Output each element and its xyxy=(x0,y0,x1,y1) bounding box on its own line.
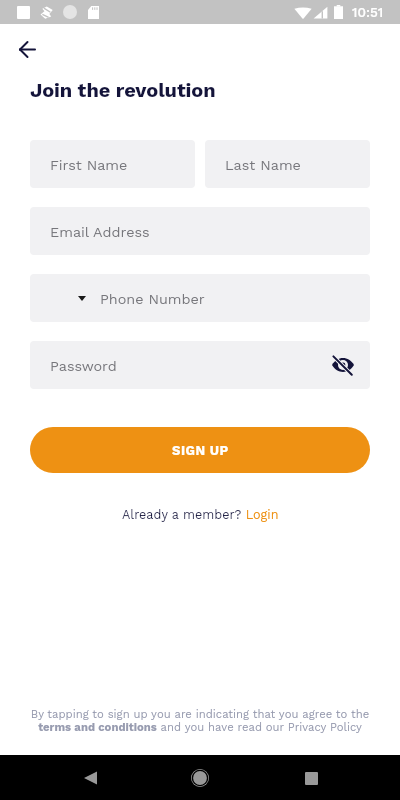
staticText: Join the revolution xyxy=(30,78,216,101)
staticText: First Name xyxy=(50,157,128,174)
button[interactable]: SIGN UP xyxy=(30,427,370,473)
button[interactable]: Last Name xyxy=(205,140,370,188)
staticText: Email Address xyxy=(50,224,150,241)
staticText: Phone Number xyxy=(100,291,205,308)
button[interactable]: First Name xyxy=(30,140,195,188)
staticText: Already a member? Login xyxy=(122,507,279,522)
button[interactable]: Password xyxy=(30,341,370,389)
button[interactable]: Phone Number xyxy=(30,274,370,322)
staticText: Last Name xyxy=(225,157,301,174)
staticText: SIGN UP xyxy=(172,443,229,458)
button[interactable]: Home xyxy=(179,757,221,799)
button[interactable]: Show password xyxy=(329,351,357,379)
button[interactable]: Email Address xyxy=(30,207,370,255)
button[interactable]: Back xyxy=(69,757,111,799)
button[interactable]: Already a member? Login xyxy=(122,507,279,522)
staticText: 10:51 xyxy=(352,4,384,20)
staticText: Password xyxy=(50,358,117,375)
button[interactable]: Recents xyxy=(290,757,332,799)
staticText: By tapping to sign up you are indicating… xyxy=(22,707,378,734)
button[interactable]: Back xyxy=(7,29,47,69)
